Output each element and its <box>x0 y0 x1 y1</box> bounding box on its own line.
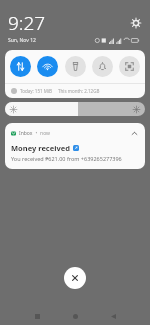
button[interactable]: Inbox <box>5 123 145 169</box>
staticText: You received ₱621.00 from +639265277396 <box>11 155 122 162</box>
button[interactable]: Clear all notifications <box>64 267 86 289</box>
staticText: Money received <box>11 143 70 153</box>
button[interactable]: Home <box>68 309 82 323</box>
staticText: Inbox <box>19 130 33 137</box>
button[interactable]: Back <box>106 309 120 323</box>
button[interactable]: Today: 151 MiB <box>5 84 145 98</box>
button[interactable]: Recents <box>30 309 44 323</box>
button[interactable]: Mobile data <box>10 56 31 77</box>
staticText: Sun, Nov 12 <box>8 37 36 44</box>
staticText: 9:27 <box>8 10 46 36</box>
button[interactable]: Ring mode <box>92 56 113 77</box>
staticText: This month: 2.12GB <box>58 88 100 94</box>
button[interactable]: Flashlight <box>65 56 86 77</box>
button[interactable]: Collapse <box>129 128 140 139</box>
staticText: Today: 151 MiB <box>20 88 52 94</box>
staticText: • now <box>33 130 51 137</box>
button[interactable]: Brightness <box>5 102 145 116</box>
button[interactable]: Wi-Fi <box>37 56 58 77</box>
button[interactable]: Settings <box>129 16 143 30</box>
button[interactable]: Screenshot <box>119 56 140 77</box>
